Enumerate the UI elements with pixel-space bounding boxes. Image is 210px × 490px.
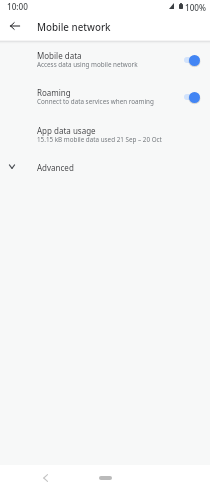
staticText: Roaming xyxy=(37,87,71,98)
button[interactable]: App data usage xyxy=(0,119,210,156)
staticText: App data usage xyxy=(37,125,96,136)
staticText: 100% xyxy=(185,2,207,13)
staticText: Mobile network xyxy=(37,21,111,34)
staticText: Mobile data xyxy=(37,50,82,61)
staticText: Connect to data services when roaming xyxy=(37,97,154,106)
staticText: 15.15 kB mobile data used 21 Sep – 20 Oc… xyxy=(37,135,162,144)
button[interactable]: Toggle switch xyxy=(183,54,201,66)
button[interactable]: Back xyxy=(36,469,54,487)
staticText: Access data using mobile network xyxy=(37,60,138,69)
button[interactable]: Mobile data xyxy=(0,44,210,81)
button[interactable]: Home xyxy=(99,476,112,480)
staticText: Advanced xyxy=(37,162,74,173)
button[interactable]: Toggle switch xyxy=(183,91,201,103)
staticText: 10:00 xyxy=(7,1,28,12)
button[interactable]: Roaming xyxy=(0,81,210,118)
button[interactable]: Back xyxy=(3,14,27,38)
button[interactable]: Advanced xyxy=(0,154,210,180)
